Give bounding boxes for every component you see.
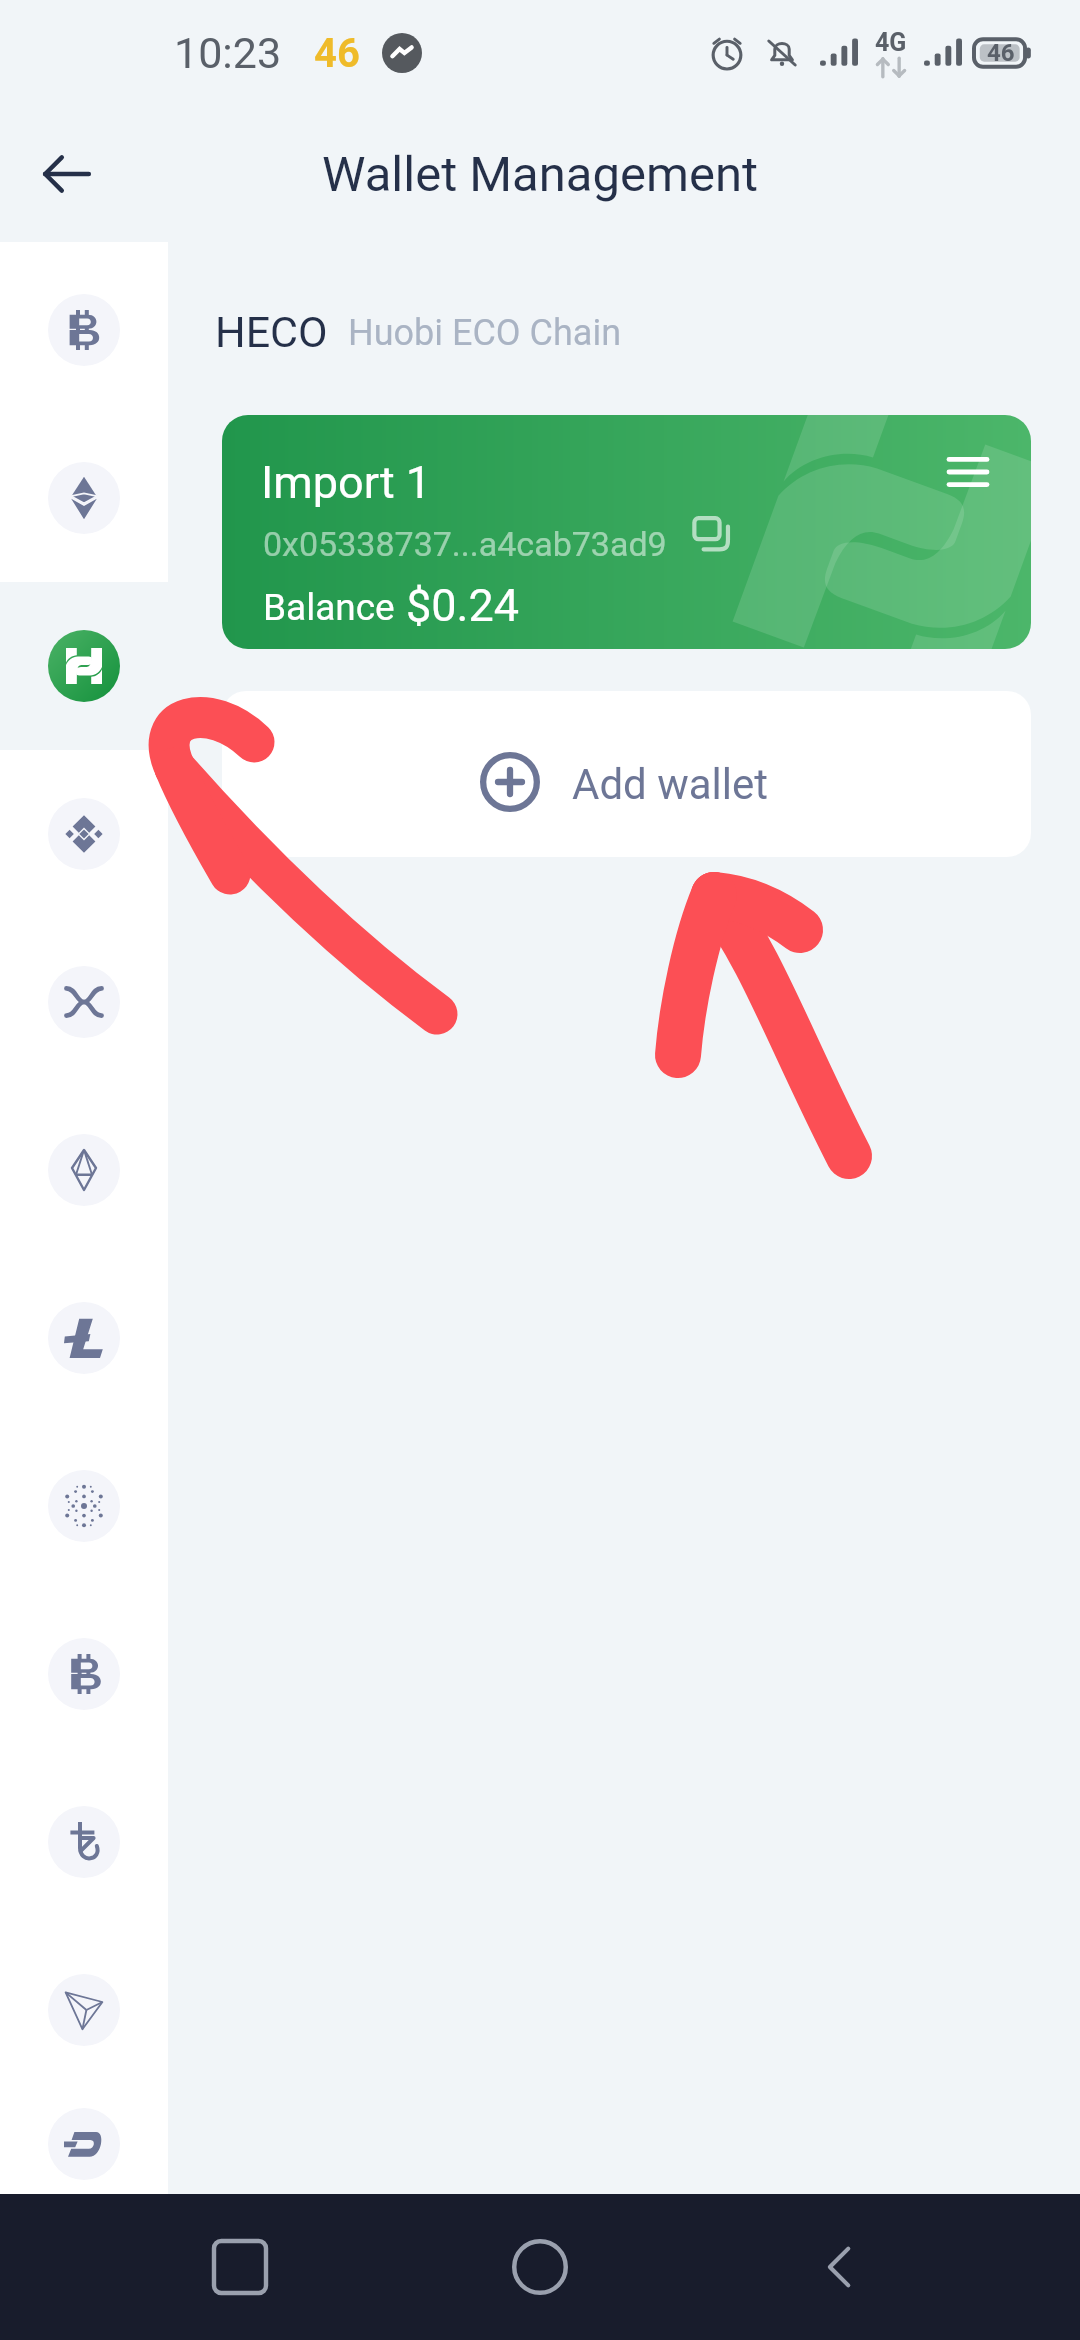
staticText: 10:23: [174, 28, 282, 78]
button[interactable]: Recents: [180, 2207, 300, 2327]
button[interactable]: Back: [780, 2207, 900, 2327]
staticText: Balance: [263, 586, 395, 629]
staticText: HECO: [215, 307, 328, 357]
button[interactable]: heco: [0, 582, 168, 750]
button[interactable]: ada: [0, 1422, 168, 1590]
button[interactable]: Add wallet: [222, 691, 1031, 857]
button[interactable]: eos: [0, 1086, 168, 1254]
staticText: Wallet Management: [322, 146, 759, 203]
button[interactable]: trx: [0, 1926, 168, 2094]
staticText: Add wallet: [572, 760, 769, 809]
button[interactable]: ltc: [0, 1254, 168, 1422]
button[interactable]: xtz: [0, 1758, 168, 1926]
staticText: 0x05338737...a4cab73ad9: [263, 524, 667, 564]
button[interactable]: eth: [0, 414, 168, 582]
button[interactable]: bnb: [0, 750, 168, 918]
staticText: 4G: [875, 28, 907, 57]
staticText: $0.24: [406, 579, 520, 632]
button[interactable]: dash: [0, 2094, 168, 2194]
staticText: Import 1: [261, 456, 432, 509]
staticText: Huobi ECO Chain: [348, 312, 622, 354]
button[interactable]: xrp: [0, 918, 168, 1086]
button[interactable]: Import 1: [222, 415, 1031, 649]
staticText: 46: [987, 39, 1015, 67]
button[interactable]: Wallet menu: [937, 441, 999, 503]
button[interactable]: Back: [22, 129, 112, 219]
button[interactable]: btc: [0, 246, 168, 414]
staticText: 46: [314, 30, 360, 77]
button[interactable]: Copy address: [684, 507, 740, 563]
button[interactable]: bch: [0, 1590, 168, 1758]
button[interactable]: Home: [480, 2207, 600, 2327]
